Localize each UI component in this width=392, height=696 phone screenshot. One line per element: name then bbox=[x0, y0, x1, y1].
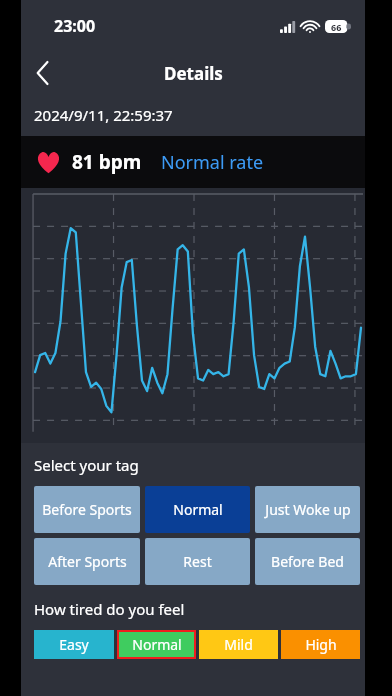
button[interactable]: Normal bbox=[119, 632, 194, 657]
staticText: Before Bed bbox=[271, 552, 344, 571]
staticText: After Sports bbox=[48, 552, 127, 571]
staticText: 66 bbox=[331, 21, 342, 33]
button[interactable]: Before Bed bbox=[255, 538, 360, 585]
staticText: 2024/9/11, 22:59:37 bbox=[34, 105, 173, 125]
staticText: Just Woke up bbox=[265, 500, 351, 519]
button[interactable]: Just Woke up bbox=[255, 486, 360, 533]
staticText: Before Sports bbox=[42, 500, 132, 519]
button[interactable]: Mild bbox=[199, 630, 278, 659]
staticText: Rest bbox=[183, 552, 212, 571]
staticText: Easy bbox=[59, 635, 89, 654]
staticText: Details bbox=[164, 62, 223, 85]
button[interactable]: High bbox=[281, 630, 360, 659]
button[interactable]: Normal rate bbox=[161, 150, 264, 175]
button[interactable]: Back bbox=[21, 52, 65, 94]
staticText: High bbox=[305, 635, 337, 654]
staticText: Mild bbox=[224, 635, 253, 654]
staticText: Select your tag bbox=[34, 455, 139, 475]
button[interactable]: Rest bbox=[145, 538, 250, 585]
staticText: Normal bbox=[173, 500, 223, 519]
staticText: 23:00 bbox=[54, 15, 96, 37]
staticText: 81 bpm bbox=[72, 149, 142, 175]
button[interactable]: Before Sports bbox=[34, 486, 140, 533]
staticText: Normal bbox=[132, 635, 182, 654]
button[interactable]: After Sports bbox=[34, 538, 140, 585]
staticText: How tired do you feel bbox=[34, 599, 185, 619]
button[interactable]: Normal bbox=[145, 486, 250, 533]
button[interactable]: Easy bbox=[34, 630, 114, 659]
